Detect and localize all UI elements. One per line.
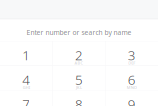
staticText: 8 <box>75 95 83 106</box>
staticText: 3 <box>128 46 136 64</box>
staticText: Enter number or search by name <box>26 28 131 37</box>
button[interactable]: 2 <box>53 41 105 65</box>
staticText: 2 <box>75 46 83 64</box>
button[interactable]: 6 <box>106 66 158 90</box>
staticText: ABC <box>74 60 83 66</box>
staticText: 7 <box>22 95 30 106</box>
button[interactable]: 7 <box>0 90 52 106</box>
staticText: 6 <box>128 71 136 88</box>
staticText: MNO <box>127 85 137 90</box>
staticText: 5 <box>75 71 83 88</box>
staticText: 1 <box>22 46 30 64</box>
button[interactable]: Enter number or search by name <box>0 20 158 41</box>
button[interactable]: 3 <box>106 41 158 65</box>
staticText: 9 <box>128 95 136 106</box>
button[interactable]: 9 <box>106 90 158 106</box>
button[interactable]: 4 <box>0 66 52 90</box>
staticText <box>26 60 27 66</box>
staticText: DEF <box>128 60 135 66</box>
button[interactable]: 8 <box>53 90 105 106</box>
staticText: 4 <box>22 71 30 88</box>
staticText: GHI <box>23 85 30 90</box>
button[interactable]: 5 <box>53 66 105 90</box>
button[interactable]: 1 <box>0 41 52 65</box>
staticText: JKL <box>76 85 82 90</box>
